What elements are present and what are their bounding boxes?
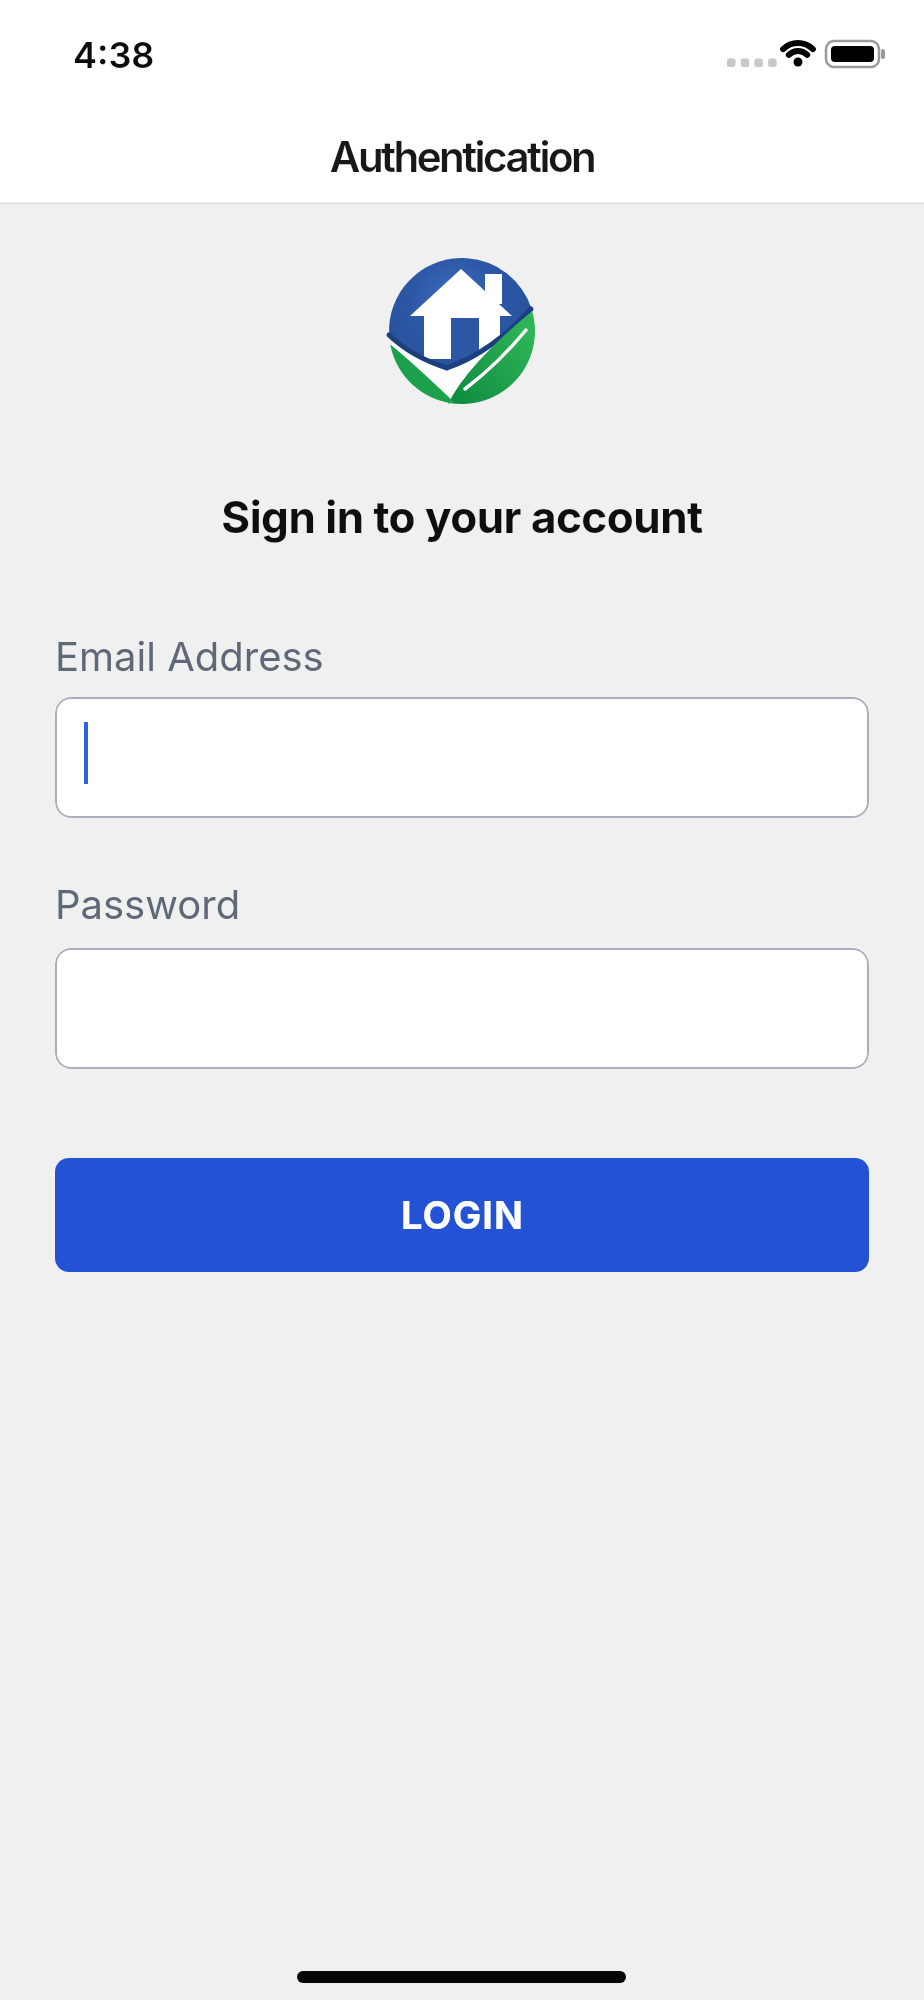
- staticText: 4:38: [73, 33, 155, 77]
- button[interactable]: [55, 948, 869, 1069]
- staticText: Authentication: [0, 131, 924, 182]
- staticText: LOGIN: [401, 1192, 524, 1238]
- button[interactable]: LOGIN: [55, 1158, 869, 1272]
- staticText: Email Address: [55, 632, 324, 680]
- staticText: Sign in to your account: [0, 490, 924, 543]
- staticText: Password: [55, 880, 241, 928]
- button[interactable]: [55, 697, 869, 818]
